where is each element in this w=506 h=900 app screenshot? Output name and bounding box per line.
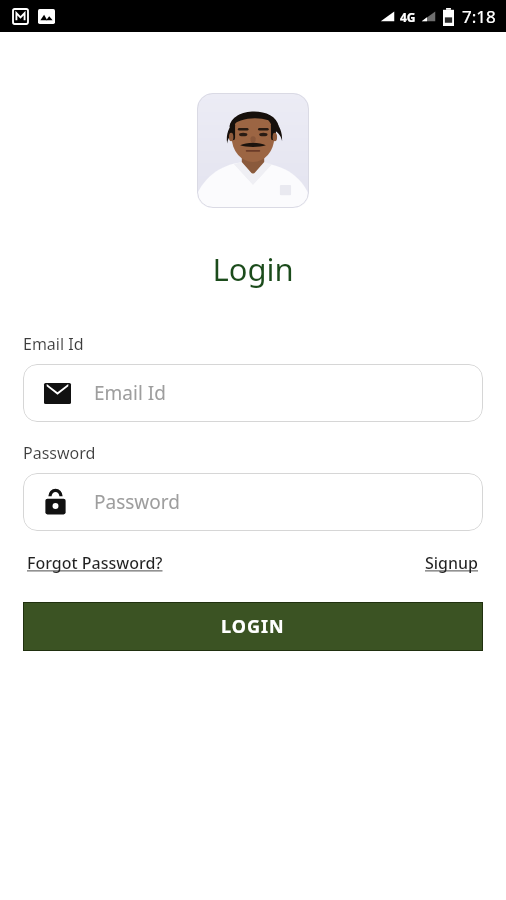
button[interactable]: Signup <box>421 549 483 577</box>
staticText: Password <box>23 442 96 464</box>
staticText: Password <box>94 489 180 515</box>
staticText: Email Id <box>94 380 166 406</box>
staticText: Forgot Password? <box>27 552 163 574</box>
staticText: 4G <box>400 9 416 25</box>
staticText: Email Id <box>23 333 84 355</box>
staticText: Login <box>0 248 506 290</box>
staticText: Signup <box>425 552 479 574</box>
button[interactable]: Password <box>23 473 483 531</box>
button[interactable]: Forgot Password? <box>23 549 167 577</box>
button[interactable]: LOGIN <box>23 602 483 651</box>
staticText: 7:18 <box>462 5 496 28</box>
button[interactable]: Email Id <box>23 364 483 422</box>
staticText: LOGIN <box>221 614 285 639</box>
button[interactable]: Profile photo <box>197 93 309 208</box>
